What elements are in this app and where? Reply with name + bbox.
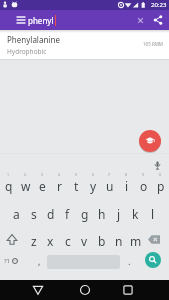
staticText: u (106, 178, 114, 194)
button[interactable]: j (110, 200, 127, 227)
button[interactable] (12, 11, 30, 29)
staticText: r (57, 178, 62, 194)
staticText: Hydrophobic (7, 47, 47, 56)
staticText: c (65, 233, 71, 249)
button[interactable]: k (127, 200, 144, 227)
staticText: 0 (159, 172, 162, 177)
staticText: d (47, 206, 55, 222)
button[interactable]: m (127, 227, 144, 254)
button[interactable]: b (93, 227, 110, 254)
button[interactable]: x (42, 227, 59, 254)
staticText: b (98, 233, 106, 249)
staticText: 4 (58, 172, 61, 177)
button[interactable]: o (135, 173, 152, 199)
button[interactable]: w (17, 173, 34, 199)
staticText: y (90, 178, 97, 194)
button[interactable]: y (85, 173, 102, 199)
button[interactable] (119, 281, 137, 299)
button[interactable]: . (122, 251, 136, 271)
button[interactable] (29, 281, 47, 299)
button[interactable]: , (32, 251, 46, 271)
staticText: e (39, 178, 46, 194)
staticText: a (13, 206, 20, 222)
staticText: k (132, 206, 139, 222)
staticText: . (128, 255, 131, 267)
button[interactable] (0, 224, 25, 251)
staticText: 20:23 (151, 1, 167, 9)
button[interactable]: l (144, 200, 161, 227)
staticText: f (65, 206, 70, 222)
staticText: t (74, 178, 79, 194)
button[interactable]: u (101, 173, 118, 199)
button[interactable]: g (76, 200, 93, 227)
button[interactable]: t (68, 173, 85, 199)
staticText: m (130, 233, 142, 249)
button[interactable] (145, 252, 161, 268)
staticText: 3 (41, 172, 44, 177)
staticText: w (21, 178, 31, 194)
staticText: i (125, 178, 129, 194)
staticText: v (81, 233, 88, 249)
button[interactable]: ?1 (0, 251, 30, 271)
staticText: 2 (24, 172, 27, 177)
button[interactable]: p (152, 173, 169, 199)
staticText: 165 RMM (143, 41, 163, 47)
button[interactable]: i (118, 173, 135, 199)
staticText: 9 (142, 172, 145, 177)
staticText: s (31, 206, 37, 222)
staticText: g (81, 206, 89, 222)
button[interactable]: c (59, 227, 76, 254)
staticText: 1 (7, 172, 10, 177)
staticText: j (117, 206, 121, 222)
staticText: ?1 (4, 257, 11, 265)
button[interactable] (151, 13, 165, 27)
button[interactable]: h (93, 200, 110, 227)
staticText: 5 (75, 172, 78, 177)
staticText: x (47, 233, 54, 249)
staticText: n (115, 233, 123, 249)
button[interactable]: z (25, 227, 42, 254)
staticText: 7 (108, 172, 111, 177)
button[interactable]: n (110, 227, 127, 254)
button[interactable]: v (76, 227, 93, 254)
staticText: p (157, 178, 165, 194)
staticText: 6 (92, 172, 95, 177)
staticText: phenyl (28, 15, 54, 26)
staticText: z (31, 233, 37, 249)
button[interactable] (134, 14, 147, 27)
staticText: 8 (125, 172, 128, 177)
staticText: l (151, 206, 155, 222)
button[interactable] (153, 161, 162, 170)
button[interactable]: d (42, 200, 59, 227)
button[interactable]: f (59, 200, 76, 227)
button[interactable]: r (51, 173, 68, 199)
staticText: Phenylalanine (7, 34, 60, 45)
button[interactable]: Phenylalanine (0, 30, 169, 60)
staticText: q (5, 178, 13, 194)
button[interactable]: q (0, 173, 17, 199)
button[interactable] (144, 224, 169, 251)
button[interactable]: a (8, 200, 25, 227)
staticText: h (98, 206, 106, 222)
button[interactable]: s (25, 200, 42, 227)
button[interactable] (76, 281, 94, 299)
button[interactable]: e (34, 173, 51, 199)
staticText: , (38, 255, 41, 267)
staticText: o (140, 178, 148, 194)
button[interactable] (139, 130, 161, 152)
